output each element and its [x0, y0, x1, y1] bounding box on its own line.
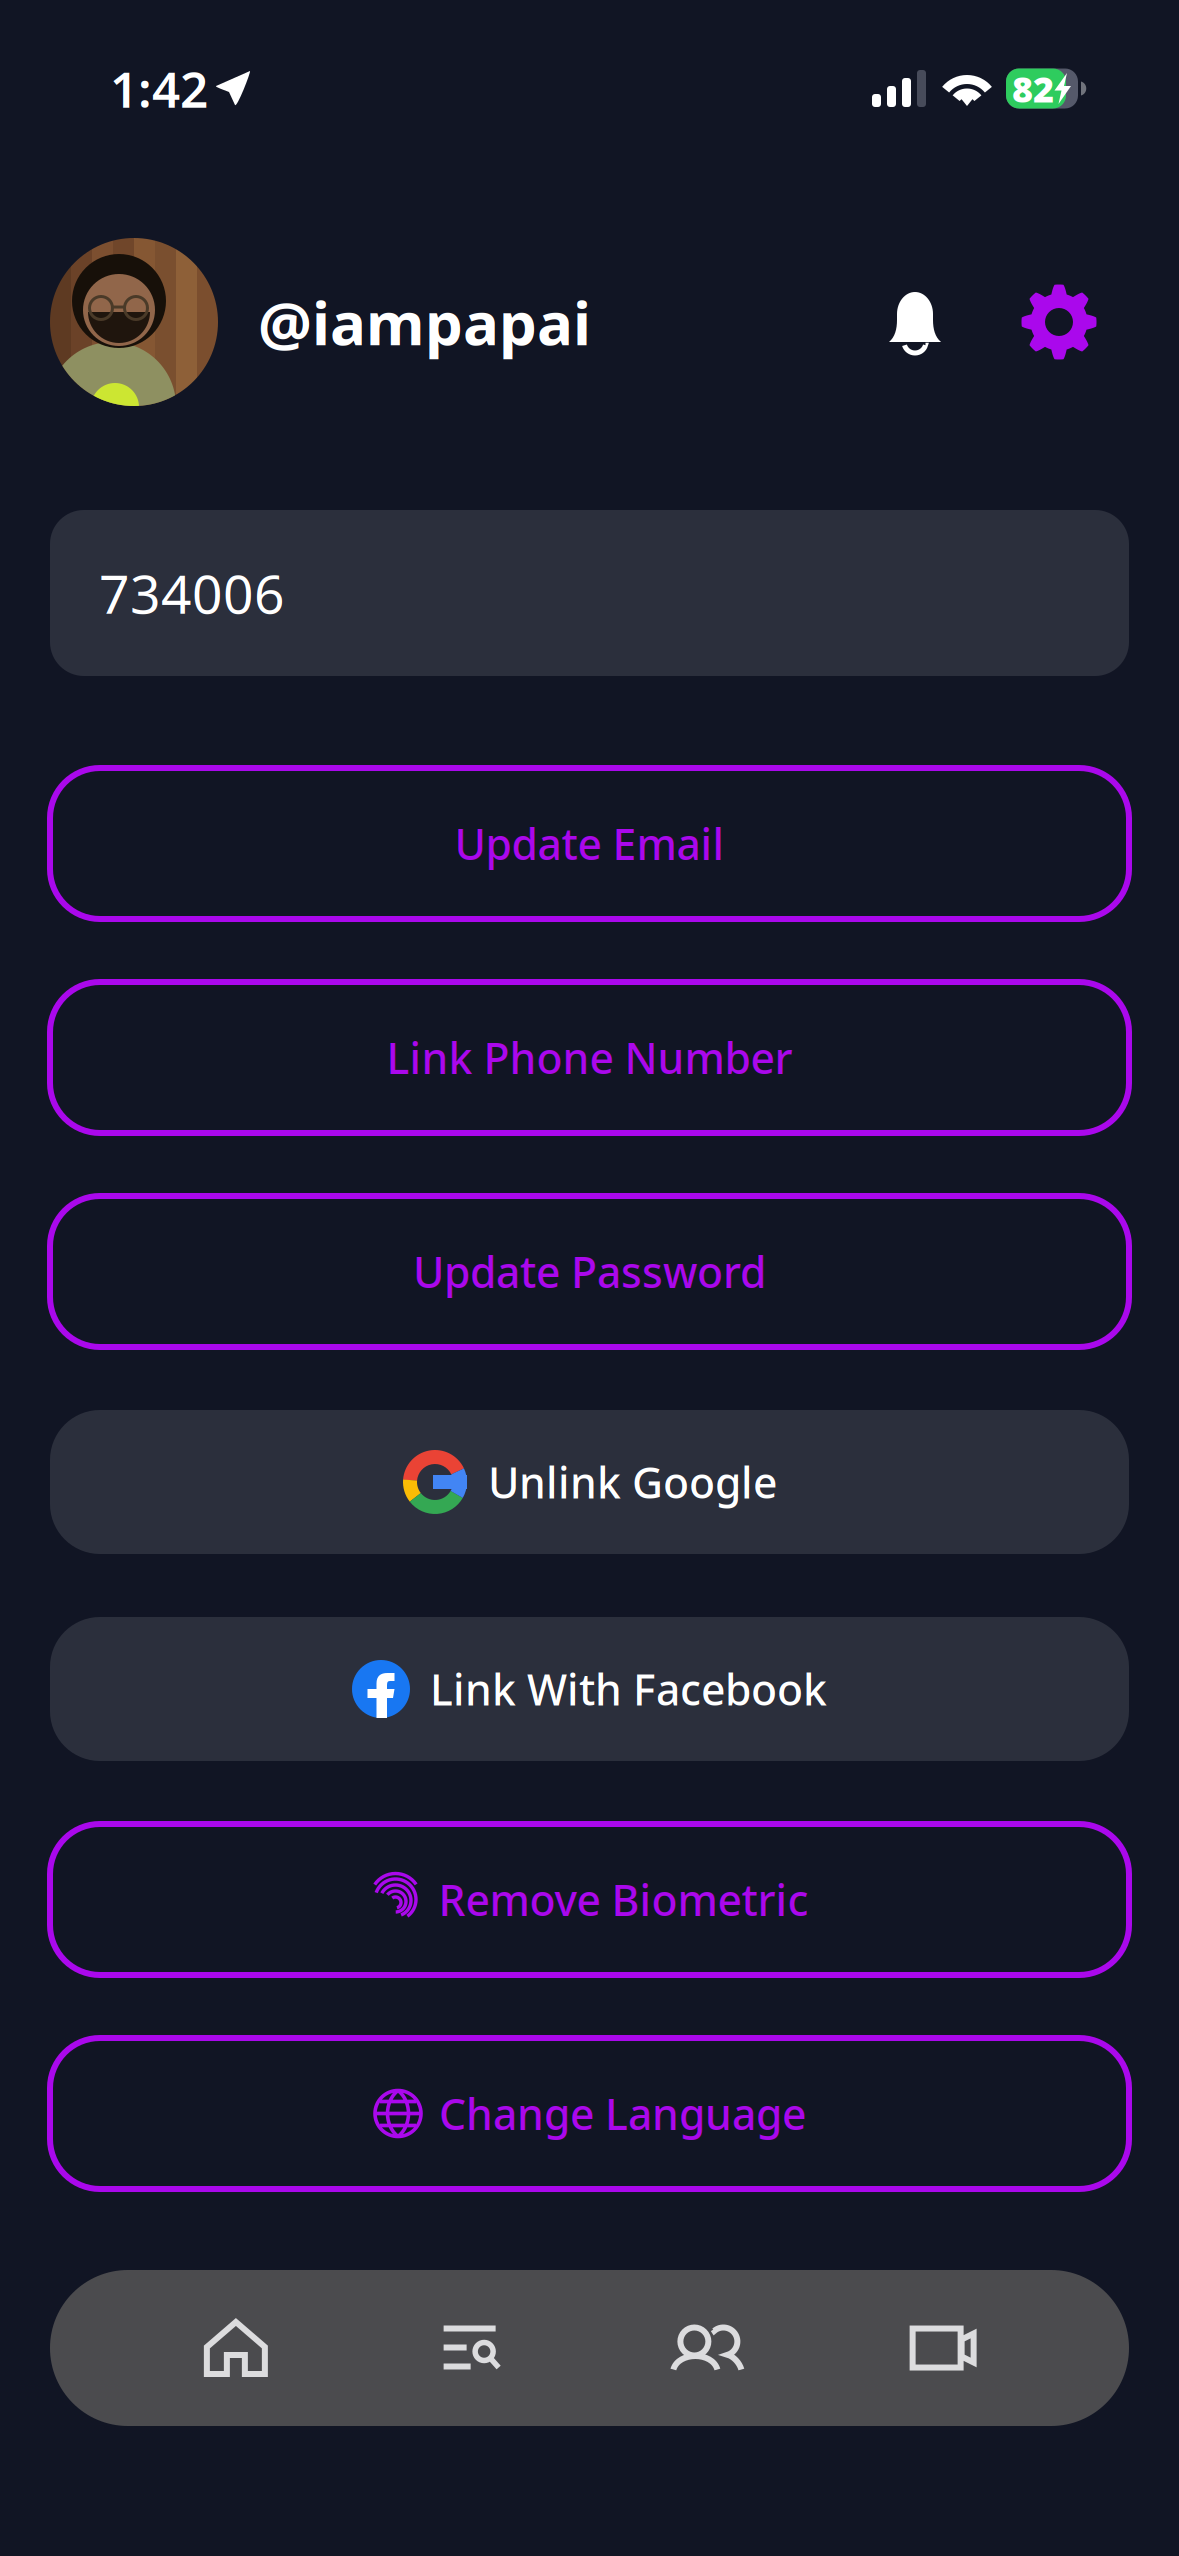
button[interactable]: Home [118, 2270, 354, 2426]
staticText: Update Password [413, 1243, 766, 1300]
button[interactable]: Remove Biometric [50, 1824, 1129, 1975]
button[interactable]: Video [825, 2270, 1061, 2426]
staticText: Change Language [439, 2085, 806, 2142]
button[interactable]: Link Phone Number [50, 982, 1129, 1133]
staticText: Link Phone Number [386, 1029, 792, 1086]
staticText: 734006 [99, 558, 285, 628]
button[interactable]: Browse [354, 2270, 590, 2426]
button[interactable]: Link With Facebook [50, 1617, 1129, 1761]
staticText: 1:42 [110, 56, 208, 121]
staticText: Remove Biometric [438, 1871, 808, 1928]
button[interactable]: Update Password [50, 1196, 1129, 1347]
button[interactable]: Change Language [50, 2038, 1129, 2189]
staticText: @iampapai [258, 282, 591, 362]
button[interactable]: Unlink Google [50, 1410, 1129, 1554]
button[interactable]: Settings [967, 262, 1111, 382]
button[interactable]: People [589, 2270, 825, 2426]
button[interactable]: Notifications [863, 262, 967, 382]
button[interactable]: Update Email [50, 768, 1129, 919]
staticText: Link With Facebook [430, 1661, 827, 1717]
staticText: 82 [1012, 65, 1054, 112]
staticText: Update Email [454, 815, 724, 872]
staticText: Unlink Google [488, 1454, 777, 1510]
